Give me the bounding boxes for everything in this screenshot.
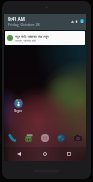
button[interactable]: Phone: [8, 134, 16, 142]
button[interactable]: 9:41 AM: [4, 14, 86, 30]
staticText: 9:41 AM: [8, 16, 25, 22]
staticText: Skype: [14, 109, 23, 113]
staticText: নতুন বার্তাঃ আজকের খবর দেখুন: [15, 34, 49, 39]
button[interactable]: Messages: [25, 134, 33, 142]
button[interactable]: Browser: [57, 134, 65, 142]
button[interactable]: Recents: [65, 150, 73, 158]
button[interactable]: All apps: [41, 134, 49, 142]
button[interactable]: Skype: [10, 99, 27, 115]
button[interactable]: Back: [15, 150, 23, 158]
button[interactable]: Camera: [74, 134, 82, 142]
staticText: Friday, October 28: [8, 22, 40, 27]
button[interactable]: Account: [80, 19, 84, 23]
button[interactable]: Home: [41, 150, 49, 158]
button[interactable]: নতুন বার্তাঃ আজকের খবর দেখুন: [5, 31, 85, 45]
staticText: ধন্যবাদ, আপনার বার্তা: [15, 39, 36, 43]
